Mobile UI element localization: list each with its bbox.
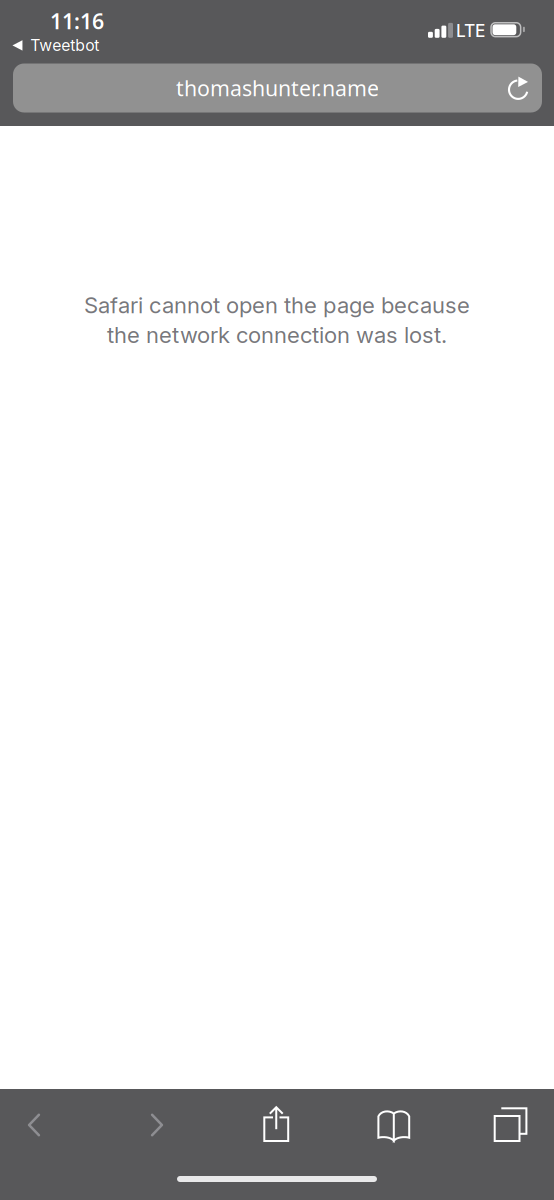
staticText: thomashunter.name	[176, 74, 379, 102]
staticText: Tweetbot	[30, 36, 99, 55]
button[interactable]: Tabs	[473, 1096, 547, 1152]
button[interactable]: Back	[0, 1097, 71, 1153]
button[interactable]: thomashunter.name	[13, 63, 542, 112]
staticText: LTE	[456, 20, 485, 41]
staticText: 11:16	[50, 7, 104, 35]
button[interactable]: Share	[239, 1096, 313, 1152]
button[interactable]: Tweetbot	[0, 31, 113, 60]
button[interactable]: Bookmarks	[357, 1097, 431, 1153]
button[interactable]: Forward	[120, 1097, 194, 1153]
staticText: Safari cannot open the page because	[84, 292, 470, 318]
staticText: the network connection was lost.	[107, 321, 447, 348]
